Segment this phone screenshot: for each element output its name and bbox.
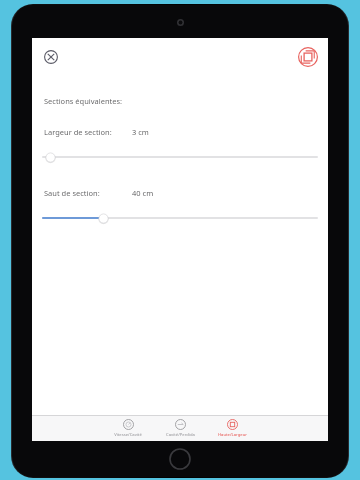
button[interactable]: Haute Largeur xyxy=(206,416,258,441)
button[interactable]: Cavité Perdida xyxy=(154,416,206,441)
button[interactable] xyxy=(42,210,318,226)
staticText: Vitesse/Cavité xyxy=(114,432,142,438)
staticText: Saut de section: xyxy=(44,188,132,198)
staticText: Largeur de section: xyxy=(44,127,132,137)
staticText: Sections équivalentes: xyxy=(44,96,123,106)
button[interactable]: Section xyxy=(294,43,322,71)
button[interactable] xyxy=(42,149,318,165)
button[interactable]: Vitesse Cavité xyxy=(102,416,154,441)
staticText: Cavité/Perdida xyxy=(166,432,195,438)
staticText: Haute/Largeur xyxy=(218,432,247,438)
button[interactable]: Fermer xyxy=(38,44,64,70)
staticText: 40 cm xyxy=(132,188,154,198)
staticText: 3 cm xyxy=(132,127,149,137)
